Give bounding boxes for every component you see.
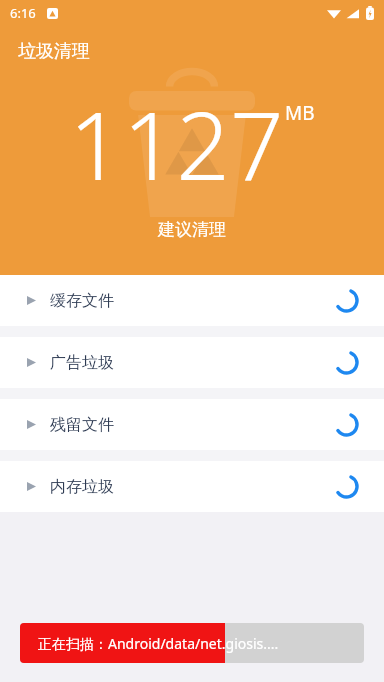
- button[interactable]: 正在扫描：Android/data/net.giosis....: [20, 623, 364, 663]
- button[interactable]: 缓存文件: [0, 275, 384, 326]
- staticText: 残留文件: [50, 415, 114, 435]
- staticText: 建议清理: [158, 219, 226, 240]
- staticText: 垃圾清理: [18, 40, 90, 63]
- other: Loading: [336, 352, 357, 373]
- staticText: MB: [285, 100, 315, 126]
- staticText: 1127: [69, 80, 284, 208]
- button[interactable]: 内存垃圾: [0, 461, 384, 512]
- staticText: 广告垃圾: [50, 353, 114, 373]
- other: Loading: [336, 476, 357, 497]
- other: Loading: [336, 414, 357, 435]
- staticText: 内存垃圾: [50, 477, 114, 497]
- button[interactable]: 广告垃圾: [0, 337, 384, 388]
- staticText: 6:16: [10, 4, 36, 22]
- button[interactable]: 残留文件: [0, 399, 384, 450]
- staticText: 缓存文件: [50, 291, 114, 311]
- staticText: 正在扫描：Android/data/net.giosis....: [38, 634, 279, 653]
- other: Loading: [336, 290, 357, 311]
